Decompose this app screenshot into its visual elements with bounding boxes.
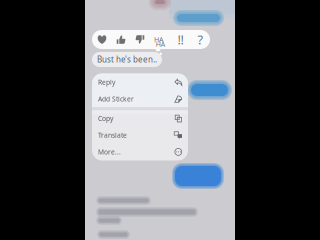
staticText: Translate xyxy=(98,131,127,140)
button[interactable]: Haha xyxy=(149,30,170,49)
button[interactable]: Exclamation xyxy=(170,30,190,49)
staticText: Reply xyxy=(98,78,115,87)
staticText: More... xyxy=(98,147,121,156)
staticText: HA xyxy=(156,39,166,49)
staticText: ? xyxy=(197,31,202,48)
staticText: Copy xyxy=(98,114,113,123)
button[interactable]: Thumbs down xyxy=(130,30,149,49)
button[interactable]: Translate xyxy=(92,127,188,143)
button[interactable]: Reply xyxy=(92,74,188,90)
staticText: Add Sticker xyxy=(98,94,134,103)
button[interactable]: More... xyxy=(92,144,188,160)
staticText: HA xyxy=(154,35,164,44)
staticText: !! xyxy=(177,31,183,48)
button[interactable]: Question mark xyxy=(190,30,209,49)
staticText: Bust he's been.. xyxy=(97,54,157,65)
button[interactable]: Love xyxy=(92,30,111,49)
button[interactable]: Copy xyxy=(92,110,188,127)
button[interactable]: Add Sticker xyxy=(92,90,188,107)
button[interactable]: Thumbs up xyxy=(111,30,130,49)
